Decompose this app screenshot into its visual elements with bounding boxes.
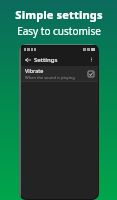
staticText: Settings bbox=[34, 56, 58, 64]
button[interactable]: Back bbox=[21, 53, 34, 66]
button[interactable]: Vibrate toggle bbox=[86, 69, 95, 78]
staticText: Vibrate bbox=[25, 67, 44, 74]
staticText: Easy to customise bbox=[17, 24, 101, 38]
button[interactable]: Vibrate bbox=[21, 66, 98, 81]
button[interactable]: More options bbox=[85, 53, 98, 66]
staticText: When the sound is playing bbox=[25, 75, 75, 80]
staticText: Simple settings bbox=[15, 7, 103, 22]
